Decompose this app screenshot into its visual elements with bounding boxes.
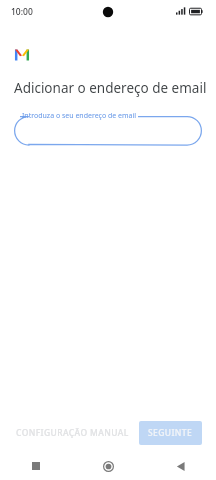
button[interactable]: Home: [72, 452, 144, 480]
button[interactable]: Introduza o seu endereço de email: [14, 111, 202, 145]
staticText: 10:00: [11, 6, 33, 18]
button[interactable]: Recent apps: [0, 452, 72, 480]
staticText: SEGUINTE: [148, 427, 193, 439]
button[interactable]: CONFIGURAÇÃO MANUAL: [14, 422, 131, 444]
staticText: CONFIGURAÇÃO MANUAL: [16, 427, 129, 439]
staticText: Introduza o seu endereço de email: [22, 111, 137, 121]
button[interactable]: Back: [144, 452, 216, 480]
staticText: Adicionar o endereço de email: [14, 79, 207, 97]
button[interactable]: SEGUINTE: [139, 421, 202, 445]
